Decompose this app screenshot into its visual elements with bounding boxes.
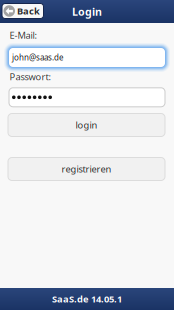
button[interactable]: registrieren [8,157,165,180]
staticText: SaaS.de 14.05.1 [52,293,122,305]
staticText: john@saas.de [12,52,64,63]
button[interactable]: Back [2,3,43,18]
staticText: Back [17,5,40,17]
staticText: Login [72,4,102,19]
staticText: login [75,119,97,131]
staticText: registrieren [61,163,111,175]
staticText: E-Mail: [9,29,37,41]
staticText: Passwort: [9,70,51,83]
button[interactable]: login [8,113,165,136]
